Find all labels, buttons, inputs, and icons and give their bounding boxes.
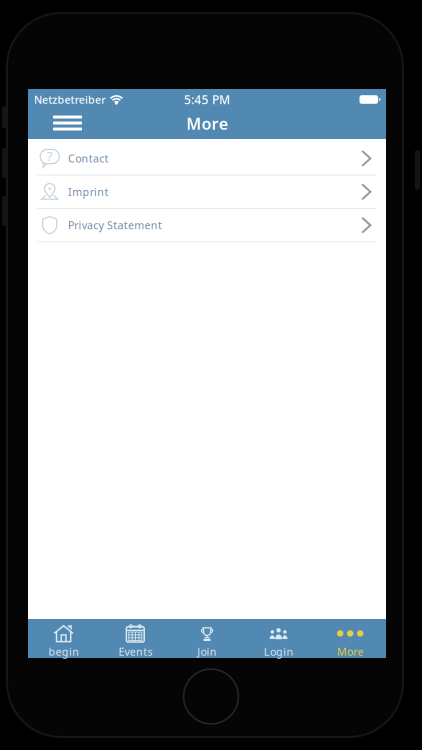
staticText: Events bbox=[118, 644, 152, 659]
button[interactable]: Login bbox=[243, 619, 314, 658]
button[interactable]: Privacy Statement bbox=[28, 209, 386, 242]
button[interactable]: Events bbox=[100, 619, 171, 658]
staticText: Privacy Statement bbox=[68, 218, 162, 232]
button[interactable]: begin bbox=[28, 619, 100, 658]
staticText: Login bbox=[264, 644, 293, 659]
staticText: Join bbox=[197, 644, 217, 659]
staticText: More bbox=[186, 113, 228, 134]
staticText: Imprint bbox=[68, 185, 108, 199]
button[interactable]: Imprint bbox=[28, 176, 386, 209]
staticText: ? bbox=[47, 147, 53, 165]
button[interactable]: ? bbox=[28, 142, 386, 176]
button[interactable]: More bbox=[314, 619, 386, 658]
staticText: More bbox=[337, 644, 363, 659]
button[interactable]: Join bbox=[171, 619, 243, 658]
staticText: begin bbox=[48, 644, 79, 659]
staticText: 5:45 PM bbox=[184, 91, 230, 107]
button[interactable]: Menu bbox=[28, 110, 92, 139]
staticText: Contact bbox=[68, 151, 108, 165]
staticText: Netzbetreiber bbox=[34, 92, 106, 107]
